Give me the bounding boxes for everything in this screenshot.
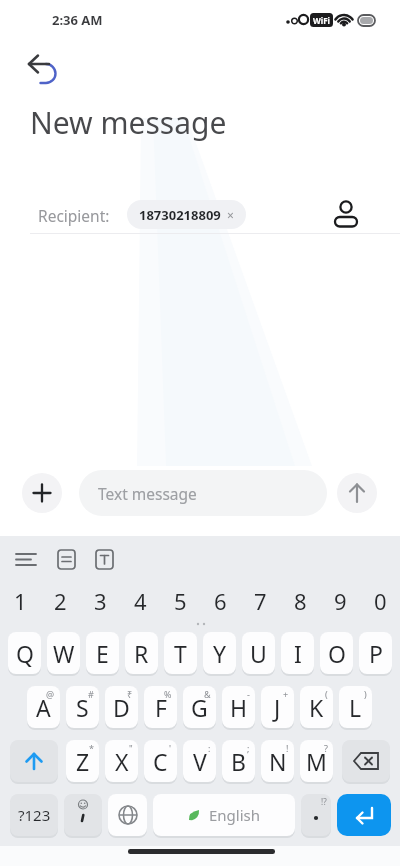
staticText: Recipient: [38,205,110,226]
button[interactable] [10,740,58,782]
staticText: Q [16,638,34,669]
staticText: O [328,638,346,669]
staticText: P [369,638,383,669]
button[interactable]: 8 [280,580,320,622]
button[interactable] [22,473,62,513]
staticText: 18730218809 [139,206,221,224]
staticText: ? [324,742,328,754]
staticText: 2 [54,586,67,616]
staticText: 7 [254,586,267,616]
button[interactable]: O [320,632,353,674]
staticText: 6 [214,586,227,616]
button[interactable] [16,46,64,94]
staticText: D [113,692,130,723]
staticText: & [204,688,211,700]
button[interactable]: R [125,632,158,674]
button[interactable] [52,545,80,573]
button[interactable]: Text message [79,470,327,516]
button[interactable]: M [300,740,333,782]
staticText: B [231,746,246,777]
staticText: V [193,746,207,777]
staticText: WiFi [313,15,330,26]
button[interactable]: C [144,740,177,782]
button[interactable]: F [144,686,177,728]
button[interactable]: G [183,686,216,728]
staticText: G [191,692,208,723]
button[interactable]: B [222,740,255,782]
button[interactable]: 2 [40,580,80,622]
staticText: ) [364,688,367,700]
button[interactable]: H [222,686,255,728]
staticText: X [115,746,129,777]
staticText: @ [46,688,55,700]
staticText: H [230,692,248,723]
staticText: A [36,692,51,723]
button[interactable] [337,473,377,513]
button[interactable]: I [281,632,314,674]
button[interactable]: L [339,686,372,728]
staticText: K [309,692,324,723]
staticText: 2:36 AM [52,11,103,29]
button[interactable]: !? [301,794,331,836]
staticText: E [96,638,109,669]
button[interactable]: K [300,686,333,728]
button[interactable]: Y [203,632,236,674]
button[interactable]: D [105,686,138,728]
button[interactable]: English [153,794,295,836]
button[interactable]: U [242,632,275,674]
staticText: S [76,692,89,723]
button[interactable]: E [86,632,119,674]
staticText: % [164,688,172,700]
staticText: ' [169,742,172,754]
button[interactable] [64,794,102,836]
staticText: # [88,688,94,700]
button[interactable]: 6 [200,580,240,622]
staticText: ?123 [18,805,51,825]
button[interactable]: 0 [360,580,400,622]
staticText: L [349,692,362,723]
button[interactable]: P [359,632,392,674]
staticText: R [134,638,149,669]
button[interactable]: 3 [80,580,120,622]
staticText: 5 [174,586,187,616]
staticText: ( [325,688,328,700]
button[interactable]: 9 [320,580,360,622]
button[interactable]: 7 [240,580,280,622]
button[interactable]: Z [66,740,99,782]
staticText: W [53,638,75,669]
button[interactable]: ?123 [10,794,58,836]
button[interactable]: X [105,740,138,782]
staticText: !? [321,796,327,807]
button[interactable]: J [261,686,294,728]
staticText: English [209,805,261,825]
button[interactable]: A [27,686,60,728]
button[interactable]: N [261,740,294,782]
button[interactable] [337,794,391,836]
button[interactable]: W [47,632,80,674]
staticText: Y [213,638,227,669]
staticText: ! [286,742,289,754]
button[interactable]: Q [8,632,41,674]
button[interactable]: T [164,632,197,674]
button[interactable] [8,545,44,573]
button[interactable] [328,194,364,234]
button[interactable]: 18730218809 [127,200,246,229]
staticText: × [227,207,234,223]
staticText: 8 [294,586,307,616]
staticText: T [174,638,187,669]
button[interactable]: 4 [120,580,160,622]
staticText: 9 [334,586,347,616]
staticText: ; [247,742,250,754]
button[interactable] [108,794,147,836]
staticText: Z [76,746,90,777]
button[interactable]: 1 [0,580,40,622]
staticText: M [306,746,327,777]
button[interactable]: 5 [160,580,200,622]
staticText: 1 [14,586,27,616]
button[interactable] [342,740,390,782]
staticText: " [129,742,133,754]
button[interactable]: S [66,686,99,728]
button[interactable]: V [183,740,216,782]
button[interactable] [90,545,118,573]
staticText: 4 [134,586,147,616]
